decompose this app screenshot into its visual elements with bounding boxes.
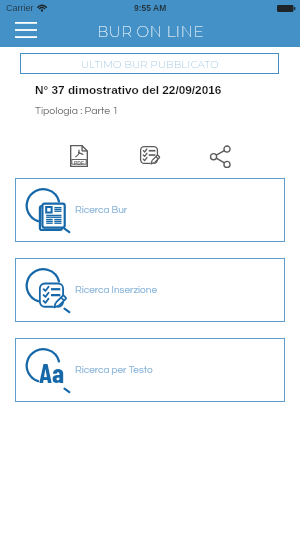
button[interactable]: Ricerca Inserzione	[15, 258, 285, 322]
button[interactable]: ULTIMO BUR PUBBLICATO	[20, 53, 279, 74]
button[interactable]: Condividi	[200, 134, 240, 178]
staticText: Tipologia : Parte 1	[35, 105, 119, 116]
staticText: BUR ON LINE	[97, 22, 204, 40]
staticText: Ricerca Inserzione	[75, 285, 157, 295]
button[interactable]: Inserzioni	[130, 134, 170, 178]
button[interactable]: Menu	[6, 16, 46, 44]
staticText: Aa	[39, 356, 65, 388]
staticText: ULTIMO BUR PUBBLICATO	[81, 58, 219, 70]
button[interactable]: Scarica PDF	[59, 134, 99, 178]
staticText: 9:55 AM	[134, 3, 167, 12]
staticText: Carrier	[6, 3, 34, 13]
button[interactable]: Aa	[15, 338, 285, 402]
button[interactable]: Ricerca Bur	[15, 178, 285, 242]
staticText: PDF	[74, 160, 84, 166]
staticText: Ricerca per Testo	[75, 365, 153, 375]
staticText: Ricerca Bur	[75, 205, 128, 215]
staticText: N° 37 dimostrativo del 22/09/2016	[35, 83, 222, 96]
